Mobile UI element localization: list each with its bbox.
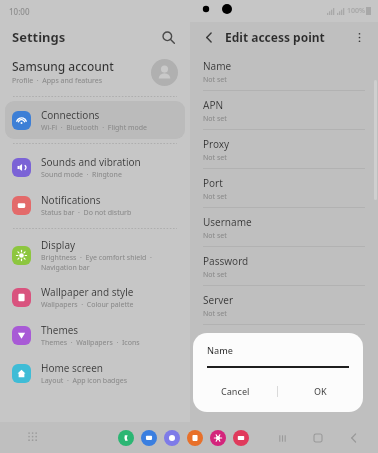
staticText: Not set <box>203 192 227 202</box>
button[interactable]: Display <box>5 233 185 278</box>
button[interactable]: MMSC <box>190 325 378 363</box>
button[interactable]: Back <box>346 430 362 446</box>
button[interactable]: App 0 <box>118 430 134 446</box>
staticText: APN <box>203 98 224 112</box>
button[interactable]: Notifications <box>5 186 185 224</box>
staticText: Themes · Wallpapers · Icons <box>41 338 140 348</box>
staticText: Wi-Fi · Bluetooth · Flight mode <box>41 123 148 133</box>
button[interactable]: Name <box>190 52 378 90</box>
staticText: Password <box>203 254 249 268</box>
button[interactable]: Username <box>190 208 378 246</box>
button[interactable]: Wallpaper and style <box>5 278 185 316</box>
button[interactable]: Themes <box>5 316 185 354</box>
button[interactable]: Samsung account <box>0 52 190 92</box>
staticText: Name <box>207 344 233 356</box>
button[interactable]: Back <box>200 28 218 46</box>
staticText: Sounds and vibration <box>41 155 141 169</box>
staticText: Not set <box>203 75 227 85</box>
button[interactable]: Password <box>190 247 378 285</box>
button[interactable]: Home <box>310 430 326 446</box>
staticText: Name <box>203 59 232 73</box>
staticText: Home screen <box>41 361 104 375</box>
staticText: 10:00 <box>9 6 30 17</box>
staticText: Display <box>41 238 76 252</box>
staticText: Themes <box>41 323 79 337</box>
button[interactable]: App 4 <box>210 430 226 446</box>
staticText: Layout · App icon badges <box>41 376 128 386</box>
button[interactable]: Home screen <box>5 354 185 392</box>
button[interactable]: APN <box>190 91 378 129</box>
button[interactable]: OK <box>278 376 363 406</box>
staticText: Not set <box>203 114 227 124</box>
button[interactable]: Proxy <box>190 130 378 168</box>
staticText: Notifications <box>41 193 101 207</box>
button[interactable]: Cancel <box>193 376 277 406</box>
staticText: Username <box>203 215 252 229</box>
staticText: Not set <box>203 153 227 163</box>
button[interactable]: Connections <box>5 101 185 139</box>
button[interactable]: App 1 <box>141 430 157 446</box>
staticText: Wallpaper and style <box>41 285 134 299</box>
staticText: Not set <box>203 348 227 358</box>
staticText: Not set <box>203 309 227 319</box>
staticText: Not set <box>203 231 227 241</box>
button[interactable]: App 2 <box>164 430 180 446</box>
staticText: Port <box>203 176 223 190</box>
staticText: Connections <box>41 108 100 122</box>
staticText: Server <box>203 293 234 307</box>
staticText: Status bar · Do not disturb <box>41 208 132 218</box>
button[interactable]: Port <box>190 169 378 207</box>
button[interactable]: Recents <box>274 430 290 446</box>
staticText: Wallpapers · Colour palette <box>41 300 134 310</box>
staticText: Edit access point <box>225 29 325 45</box>
staticText: OK <box>314 385 327 397</box>
button[interactable]: Sounds and vibration <box>5 148 185 186</box>
button[interactable]: App 3 <box>187 430 203 446</box>
staticText: Proxy <box>203 137 230 151</box>
button[interactable]: More options <box>350 28 368 46</box>
button[interactable]: Server <box>190 286 378 324</box>
staticText: Samsung account <box>12 58 114 74</box>
staticText: MMSC <box>203 332 233 346</box>
staticText: Brightness · Eye comfort shield · Naviga… <box>41 253 152 273</box>
staticText: Cancel <box>221 385 250 397</box>
staticText: Profile · Apps and features <box>12 76 103 86</box>
staticText: Sound mode · Ringtone <box>41 170 122 180</box>
button[interactable]: App 5 <box>233 430 249 446</box>
staticText: Not set <box>203 270 227 280</box>
button[interactable]: Search <box>158 27 178 47</box>
staticText: Settings <box>12 28 66 46</box>
staticText: 100% <box>347 6 365 16</box>
